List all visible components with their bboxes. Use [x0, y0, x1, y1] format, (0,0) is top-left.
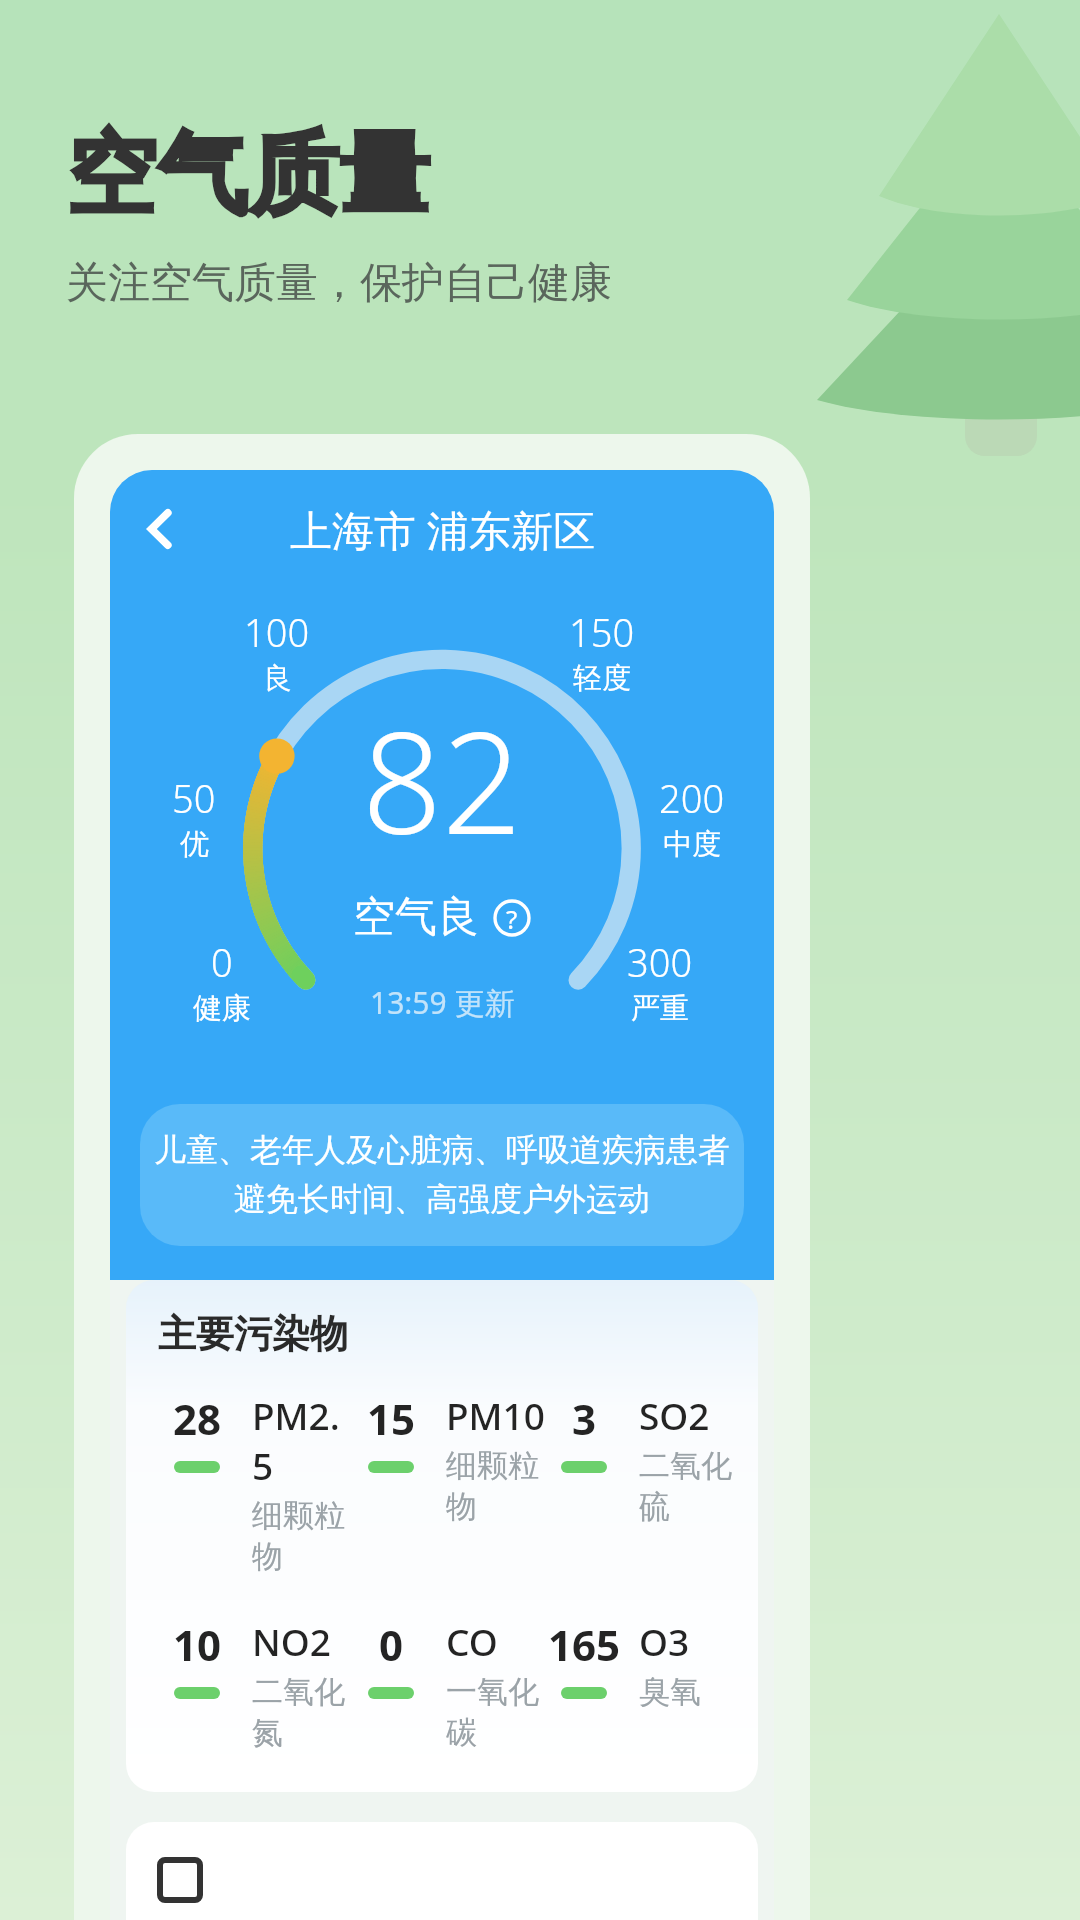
button[interactable]: 15 — [352, 1390, 545, 1526]
button[interactable]: 返回 — [120, 489, 200, 569]
staticText: PM2.5 — [252, 1390, 352, 1490]
button[interactable]: 3 — [545, 1390, 738, 1526]
staticText: 50 — [172, 772, 216, 824]
staticText: 中度 — [663, 826, 721, 863]
staticText: 0 — [379, 1616, 404, 1673]
button[interactable]: 10 — [158, 1616, 352, 1752]
staticText: 严重 — [631, 990, 689, 1027]
staticText: 一氧化碳 — [446, 1672, 545, 1752]
staticText: 0 — [211, 936, 233, 988]
staticText: 150 — [569, 606, 635, 658]
staticText: 臭氧 — [639, 1672, 701, 1711]
staticText: 细颗粒物 — [446, 1446, 545, 1526]
staticText: SO2 — [639, 1390, 710, 1440]
staticText: 健康 — [193, 990, 251, 1027]
staticText: PM10 — [446, 1390, 545, 1440]
staticText: 优 — [180, 826, 209, 863]
button[interactable]: 儿童、老年人及心脏病、呼吸道疾病患者 避免长时间、高强度户外运动 — [140, 1104, 744, 1246]
staticText: 细颗粒物 — [252, 1496, 352, 1576]
staticText: ? — [506, 901, 518, 936]
staticText: CO — [446, 1616, 498, 1666]
staticText: 100 — [244, 606, 310, 658]
staticText: 主要污染物 — [158, 1310, 348, 1358]
staticText: 82 — [362, 684, 522, 875]
staticText: 13:59 更新 — [370, 982, 515, 1023]
staticText: 轻度 — [573, 660, 631, 697]
staticText: 10 — [173, 1616, 222, 1673]
staticText: 15 — [367, 1390, 416, 1447]
staticText: 165 — [548, 1616, 621, 1673]
button[interactable]: 28 — [158, 1390, 352, 1576]
staticText: 3 — [572, 1390, 597, 1447]
staticText: 上海市 浦东新区 — [290, 501, 595, 558]
staticText: 二氧化硫 — [639, 1446, 738, 1526]
staticText: 关注空气质量，保护自己健康 — [66, 257, 612, 310]
staticText: 300 — [627, 936, 693, 988]
staticText: 空气良 — [353, 891, 479, 944]
button[interactable]: 空气良 — [345, 889, 539, 946]
button[interactable]: 0 — [352, 1616, 545, 1752]
staticText: 二氧化氮 — [252, 1672, 352, 1752]
button[interactable]: 165 — [545, 1616, 738, 1711]
staticText: O3 — [639, 1616, 690, 1666]
staticText: 200 — [659, 772, 725, 824]
staticText: 28 — [173, 1390, 222, 1447]
staticText: NO2 — [252, 1616, 331, 1666]
staticText: 儿童、老年人及心脏病、呼吸道疾病患者 避免长时间、高强度户外运动 — [154, 1130, 730, 1220]
staticText: 空气质量 — [66, 118, 430, 231]
staticText: 良 — [263, 660, 292, 697]
